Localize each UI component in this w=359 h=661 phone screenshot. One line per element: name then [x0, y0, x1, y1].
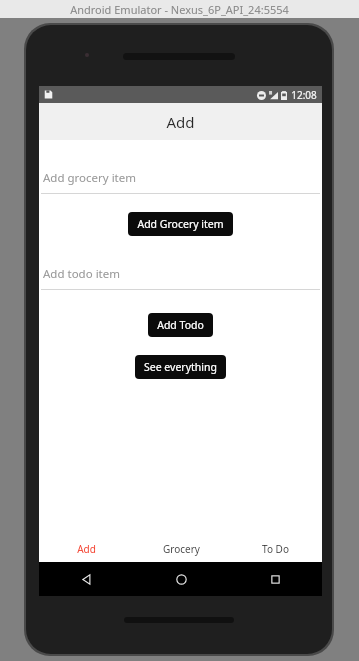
button[interactable]: Grocery [134, 535, 228, 562]
button[interactable]: See everything [135, 355, 226, 379]
button[interactable]: Back [39, 562, 134, 596]
staticText: Add [77, 542, 96, 556]
staticText: Add Todo [157, 318, 204, 332]
button[interactable]: Add Grocery item [128, 212, 233, 236]
button[interactable]: Add Todo [148, 313, 213, 337]
button[interactable]: Recent apps [228, 562, 322, 596]
button[interactable]: Add todo item [41, 264, 320, 290]
staticText: Grocery [163, 542, 200, 556]
staticText: To Do [262, 542, 289, 556]
button[interactable]: Home [134, 562, 228, 596]
button[interactable]: To Do [228, 535, 322, 562]
staticText: Add grocery item [43, 170, 136, 186]
staticText: Add Grocery item [137, 217, 224, 231]
staticText: See everything [144, 360, 217, 374]
staticText: Add todo item [43, 266, 120, 282]
staticText: 12:08 [291, 88, 317, 102]
staticText: Add [166, 112, 195, 132]
button[interactable]: Add [39, 535, 134, 562]
button[interactable]: Add grocery item [41, 168, 320, 194]
staticText: Android Emulator - Nexus_6P_API_24:5554 [70, 2, 289, 17]
